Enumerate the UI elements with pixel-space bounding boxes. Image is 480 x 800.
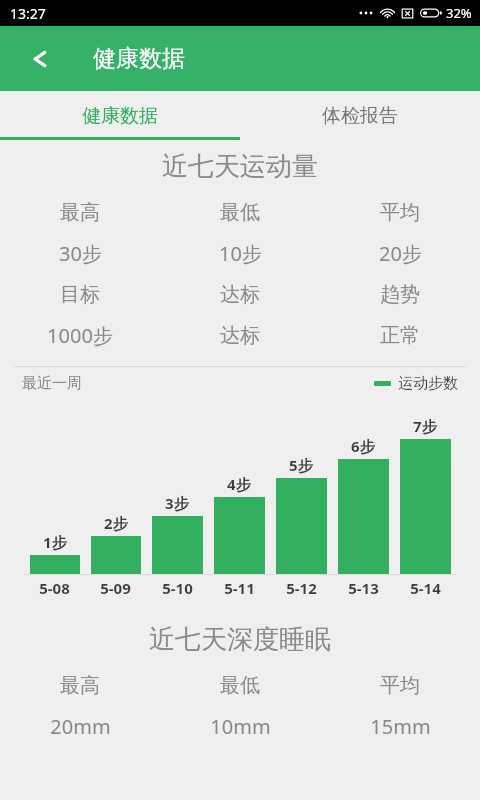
staticText: 目标 — [60, 282, 100, 307]
staticText: 5步 — [289, 455, 313, 475]
staticText: 平均 — [380, 200, 420, 225]
staticText: 达标 — [220, 282, 260, 307]
staticText: 趋势 — [380, 282, 420, 307]
staticText: 2步 — [104, 513, 128, 533]
staticText: 5-08 — [39, 578, 70, 598]
staticText: 运动步数 — [398, 374, 458, 393]
staticText: 正常 — [380, 323, 420, 348]
staticText: 健康数据 — [82, 104, 158, 128]
staticText: 最高 — [60, 200, 100, 225]
staticText: 近七天运动量 — [162, 150, 318, 183]
button[interactable]: 体检报告 — [240, 91, 480, 140]
staticText: 最高 — [60, 673, 100, 698]
staticText: 13:27 — [10, 4, 46, 23]
staticText: 10mm — [210, 713, 271, 740]
staticText: 10步 — [219, 240, 262, 267]
staticText: 5-10 — [162, 578, 193, 598]
staticText: 5-13 — [348, 578, 379, 598]
staticText: 近七天深度睡眠 — [149, 623, 331, 656]
staticText: 最低 — [220, 673, 260, 698]
staticText: 最低 — [220, 200, 260, 225]
staticText: 3步 — [165, 493, 189, 513]
staticText: 30步 — [59, 240, 102, 267]
staticText: 平均 — [380, 673, 420, 698]
staticText: 20mm — [50, 713, 111, 740]
staticText: 健康数据 — [93, 44, 185, 73]
staticText: 5-09 — [100, 578, 131, 598]
button[interactable]: Back — [14, 33, 66, 85]
staticText: 达标 — [220, 323, 260, 348]
staticText: 1步 — [43, 532, 67, 552]
staticText: 4步 — [227, 474, 251, 494]
staticText: 15mm — [370, 713, 431, 740]
staticText: 7步 — [413, 416, 437, 436]
staticText: 6步 — [351, 436, 375, 456]
staticText: 5-12 — [286, 578, 317, 598]
staticText: 5-11 — [224, 578, 255, 598]
staticText: 体检报告 — [322, 104, 398, 128]
staticText: 20步 — [379, 240, 422, 267]
button[interactable]: 健康数据 — [0, 91, 240, 140]
staticText: 最近一周 — [22, 374, 82, 393]
staticText: 32% — [446, 4, 472, 22]
staticText: 5-14 — [410, 578, 441, 598]
staticText: 1000步 — [47, 322, 113, 349]
